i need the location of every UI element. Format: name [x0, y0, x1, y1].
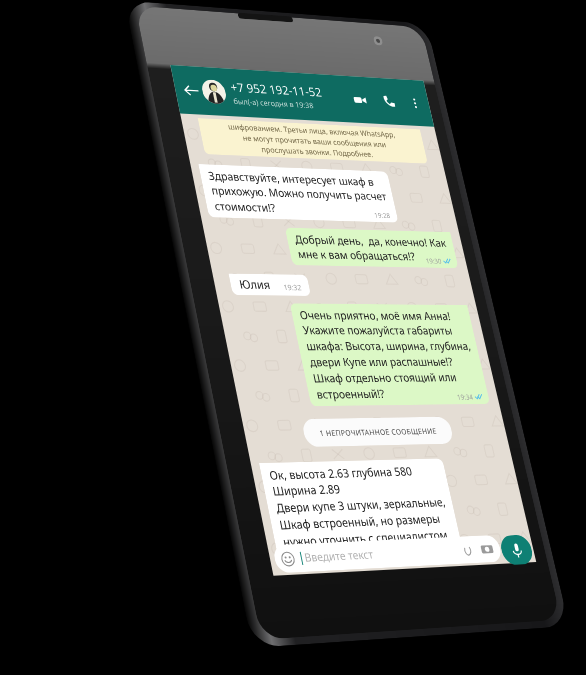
- staticText: +7 952 192-11-52: [229, 79, 323, 100]
- staticText: 19:32: [282, 282, 303, 292]
- button[interactable]: More options: [405, 94, 424, 112]
- staticText: шифрованием. Третьи лица, включая WhatsA…: [205, 120, 421, 162]
- other: Camera: [480, 542, 494, 556]
- staticText: 1 НЕПРОЧИТАННОЕ СООБЩЕНИЕ: [318, 425, 438, 438]
- button[interactable]: Back: [179, 80, 203, 100]
- button[interactable]: Video call: [348, 89, 372, 111]
- button[interactable]: Очень приятно, моё имя Анна! Укажите пож…: [289, 303, 490, 406]
- staticText: 19:34: [456, 392, 474, 401]
- button[interactable]: Юлия: [228, 273, 311, 296]
- staticText: был(-а) сегодня в 19:38: [232, 96, 314, 111]
- button[interactable]: Ок, высота 2.63 глубина 580 Ширина 2.89 …: [259, 458, 462, 555]
- staticText: 19:30: [425, 256, 443, 265]
- staticText: Здравствуйте, интересует шкаф в прихожую…: [207, 168, 391, 219]
- button[interactable]: Call: [377, 90, 401, 112]
- staticText: Добрый день, да, конечно! Как мне к вам …: [293, 231, 451, 265]
- staticText: Юлия: [238, 276, 272, 293]
- button[interactable]: Voice message: [498, 534, 535, 565]
- button[interactable]: Добрый день, да, конечно! Как мне к вам …: [285, 228, 459, 268]
- staticText: Введите текст: [303, 546, 375, 566]
- button[interactable]: Введите текст: [272, 535, 503, 573]
- staticText: Очень приятно, моё имя Анна! Укажите пож…: [298, 307, 483, 402]
- other: Attach: [461, 544, 474, 557]
- button[interactable]: 1 НЕПРОЧИТАННОЕ СООБЩЕНИЕ: [301, 417, 455, 447]
- button[interactable]: Contact photo: [200, 79, 228, 104]
- staticText: Ок, высота 2.63 глубина 580 Ширина 2.89 …: [268, 462, 454, 551]
- button[interactable]: Здравствуйте, интересует шкаф в прихожую…: [198, 164, 399, 223]
- staticText: 19:28: [373, 210, 392, 220]
